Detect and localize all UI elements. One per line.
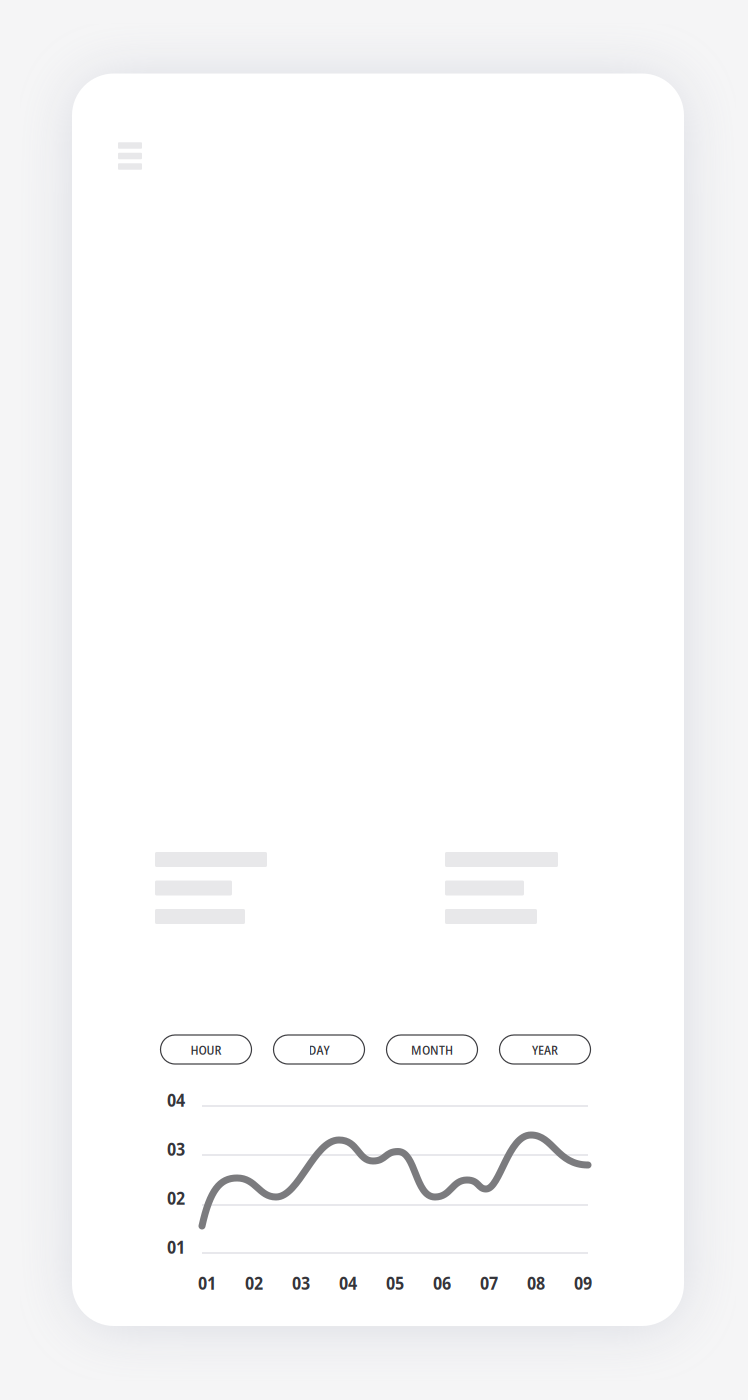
- staticText: 06: [433, 1271, 451, 1295]
- staticText: YEAR: [532, 1040, 558, 1059]
- staticText: 02: [245, 1271, 263, 1295]
- staticText: 08: [527, 1271, 545, 1295]
- staticText: 09: [574, 1271, 592, 1295]
- staticText: 01: [198, 1271, 216, 1295]
- staticText: 03: [167, 1137, 185, 1161]
- staticText: MONTH: [411, 1040, 453, 1059]
- staticText: HOUR: [190, 1040, 221, 1059]
- staticText: 04: [339, 1271, 357, 1295]
- staticText: 07: [480, 1271, 498, 1295]
- staticText: 01: [167, 1235, 185, 1259]
- button[interactable]: DAY: [273, 1035, 364, 1064]
- staticText: 05: [386, 1271, 404, 1295]
- button[interactable]: YEAR: [499, 1035, 590, 1064]
- button[interactable]: Menu: [118, 142, 142, 170]
- staticText: 04: [167, 1088, 185, 1112]
- staticText: DAY: [308, 1040, 329, 1059]
- button[interactable]: MONTH: [386, 1035, 477, 1064]
- staticText: 02: [167, 1186, 185, 1210]
- button[interactable]: HOUR: [160, 1035, 251, 1064]
- staticText: 03: [292, 1271, 310, 1295]
